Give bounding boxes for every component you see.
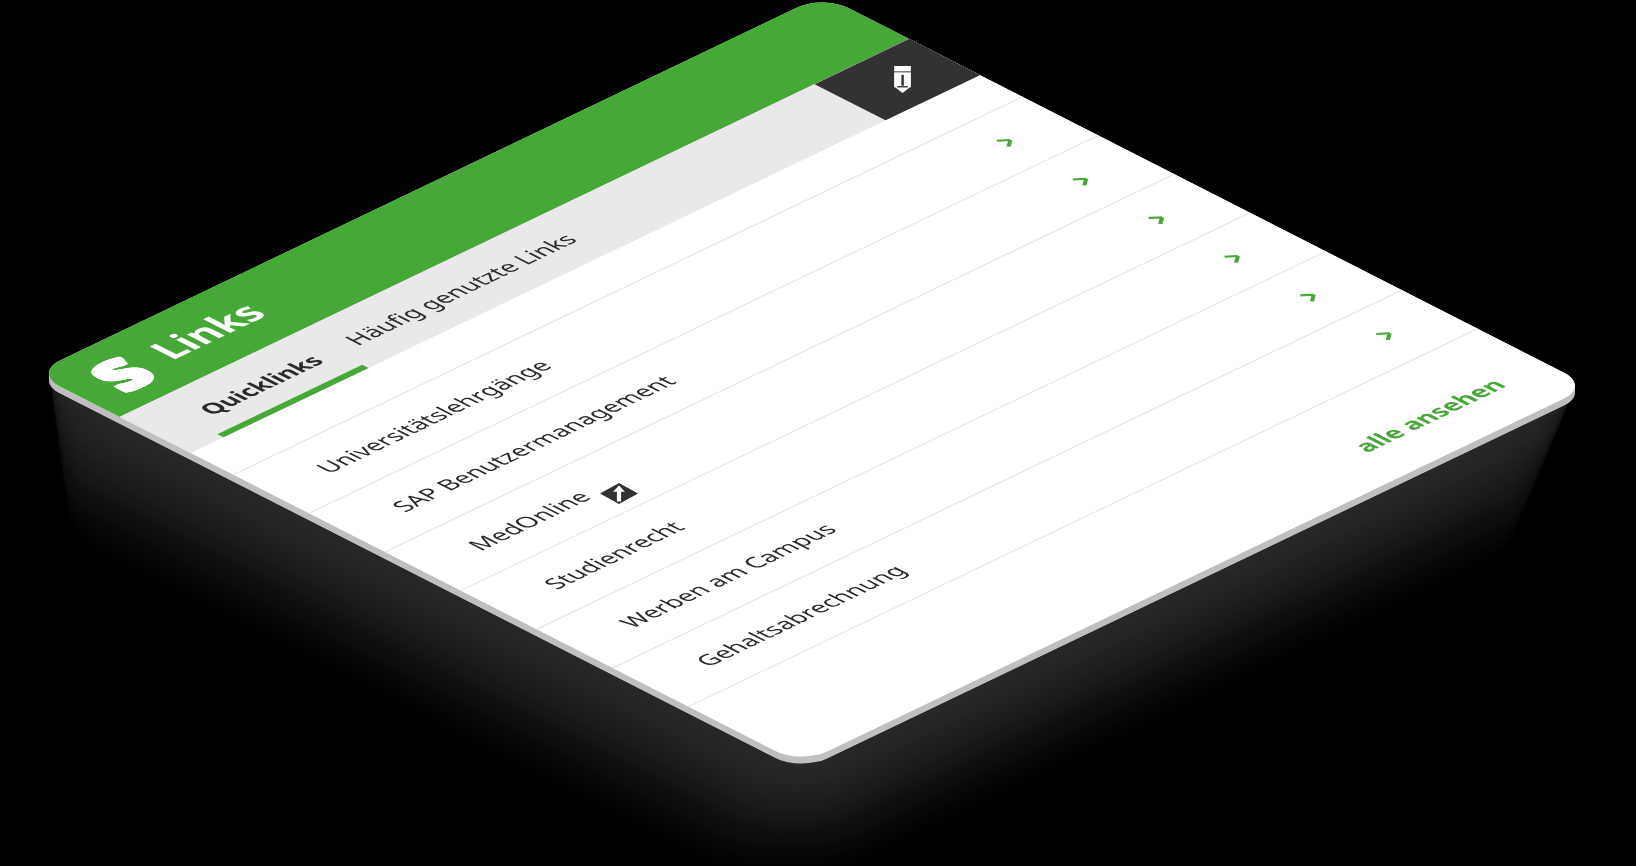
staticText: S: [65, 345, 165, 395]
staticText: MedOnline: [459, 486, 599, 555]
staticText: S: [65, 346, 165, 395]
staticText: S: [65, 344, 165, 394]
staticText: S: [65, 347, 165, 396]
staticText: S: [64, 347, 164, 397]
staticText: S: [65, 344, 165, 394]
staticText: S: [62, 347, 162, 396]
staticText: S: [66, 346, 166, 395]
button[interactable]: MedOnline: [385, 174, 1250, 590]
staticText: Universitätslehrgänge: [307, 355, 560, 477]
staticText: S: [65, 347, 164, 397]
staticText: S: [61, 346, 161, 396]
staticText: S: [65, 345, 165, 395]
button[interactable]: Werben am Campus: [537, 252, 1401, 668]
staticText: S: [63, 346, 163, 396]
staticText: S: [62, 346, 162, 396]
staticText: Werben am Campus: [610, 519, 845, 632]
staticText: S: [62, 345, 162, 395]
staticText: S: [66, 344, 166, 394]
staticText: S: [67, 346, 167, 396]
staticText: S: [67, 345, 167, 395]
staticText: S: [67, 345, 167, 395]
button[interactable]: SAP Benutzermanagement: [309, 136, 1174, 552]
staticText: S: [64, 345, 164, 395]
other: Externer Link: [600, 483, 638, 504]
button[interactable]: Studienrecht: [461, 213, 1326, 629]
staticText: S: [67, 344, 167, 394]
staticText: S: [63, 346, 162, 396]
staticText: SAP Benutzermanagement: [383, 371, 684, 516]
button[interactable]: Häufig genutzte Links: [295, 209, 625, 369]
staticText: S: [67, 346, 167, 395]
staticText: Gehaltsabrechnung: [686, 560, 915, 671]
staticText: S: [66, 346, 166, 396]
staticText: alle ansehen: [1344, 374, 1514, 456]
staticText: S: [63, 345, 162, 395]
staticText: Links: [134, 295, 279, 366]
button[interactable]: Bearbeiten: [815, 39, 980, 120]
staticText: S: [63, 347, 163, 397]
staticText: S: [63, 346, 163, 395]
staticText: S: [65, 344, 165, 394]
staticText: S: [65, 346, 165, 396]
staticText: S: [64, 344, 164, 394]
staticText: S: [63, 345, 163, 395]
button[interactable]: Quicklinks bearbeiten: [893, 66, 912, 93]
staticText: S: [64, 347, 164, 396]
staticText: S: [65, 346, 165, 396]
button[interactable]: alle ansehen: [1344, 374, 1514, 456]
staticText: Häufig genutzte Links: [336, 229, 585, 349]
button[interactable]: Quicklinks: [153, 332, 369, 437]
staticText: S: [66, 345, 166, 395]
staticText: S: [68, 345, 168, 395]
staticText: Quicklinks: [190, 350, 332, 419]
staticText: Studienrecht: [534, 517, 692, 593]
button[interactable]: Gehaltsabrechnung: [613, 290, 1477, 706]
button[interactable]: Universitätslehrgänge: [234, 97, 1098, 513]
staticText: S: [64, 346, 164, 396]
